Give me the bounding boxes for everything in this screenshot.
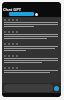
button[interactable]: Send (54, 86, 59, 91)
button[interactable]: Message (9, 12, 34, 16)
staticText: Chat GPT (3, 7, 22, 12)
